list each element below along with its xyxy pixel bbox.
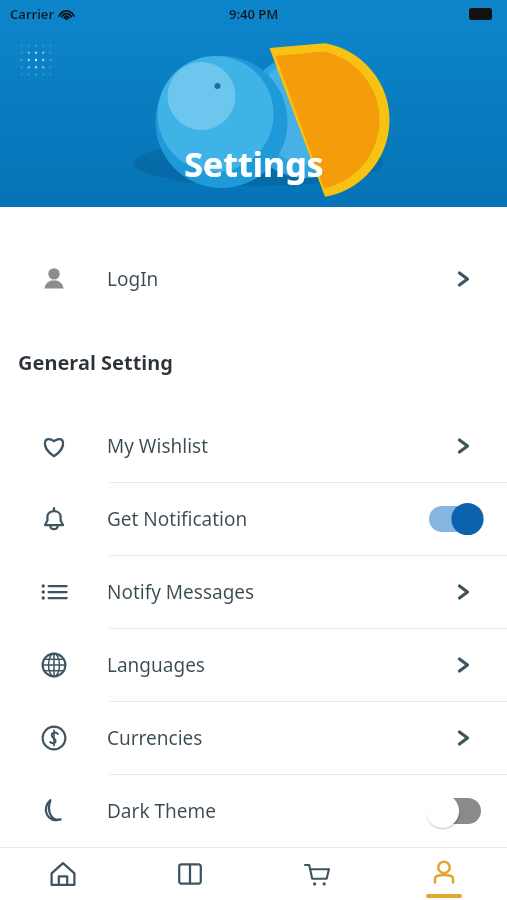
- staticText: My Wishlist: [107, 433, 209, 459]
- button[interactable]: Languages: [0, 629, 507, 701]
- button[interactable]: Currencies: [0, 702, 507, 774]
- button[interactable]: Profile: [380, 848, 507, 900]
- button[interactable]: LogIn: [0, 243, 507, 315]
- button[interactable]: Dark Theme: [0, 775, 507, 847]
- staticText: Languages: [107, 652, 205, 678]
- button[interactable]: My Wishlist: [0, 410, 507, 482]
- staticText: Notify Messages: [107, 579, 255, 605]
- staticText: Currencies: [107, 725, 203, 751]
- button[interactable]: Get Notification: [0, 483, 507, 555]
- button[interactable]: Home: [0, 848, 126, 900]
- staticText: Carrier: [10, 5, 55, 23]
- staticText: 9:40 PM: [229, 5, 279, 23]
- button[interactable]: Cart: [253, 848, 380, 900]
- button[interactable]: Catalog: [126, 848, 253, 900]
- staticText: General Setting: [18, 349, 173, 376]
- staticText: LogIn: [107, 266, 159, 292]
- staticText: Settings: [184, 141, 324, 187]
- staticText: Get Notification: [107, 506, 248, 532]
- staticText: Dark Theme: [107, 798, 216, 824]
- other: Menu: [18, 42, 54, 78]
- button[interactable]: Notify Messages: [0, 556, 507, 628]
